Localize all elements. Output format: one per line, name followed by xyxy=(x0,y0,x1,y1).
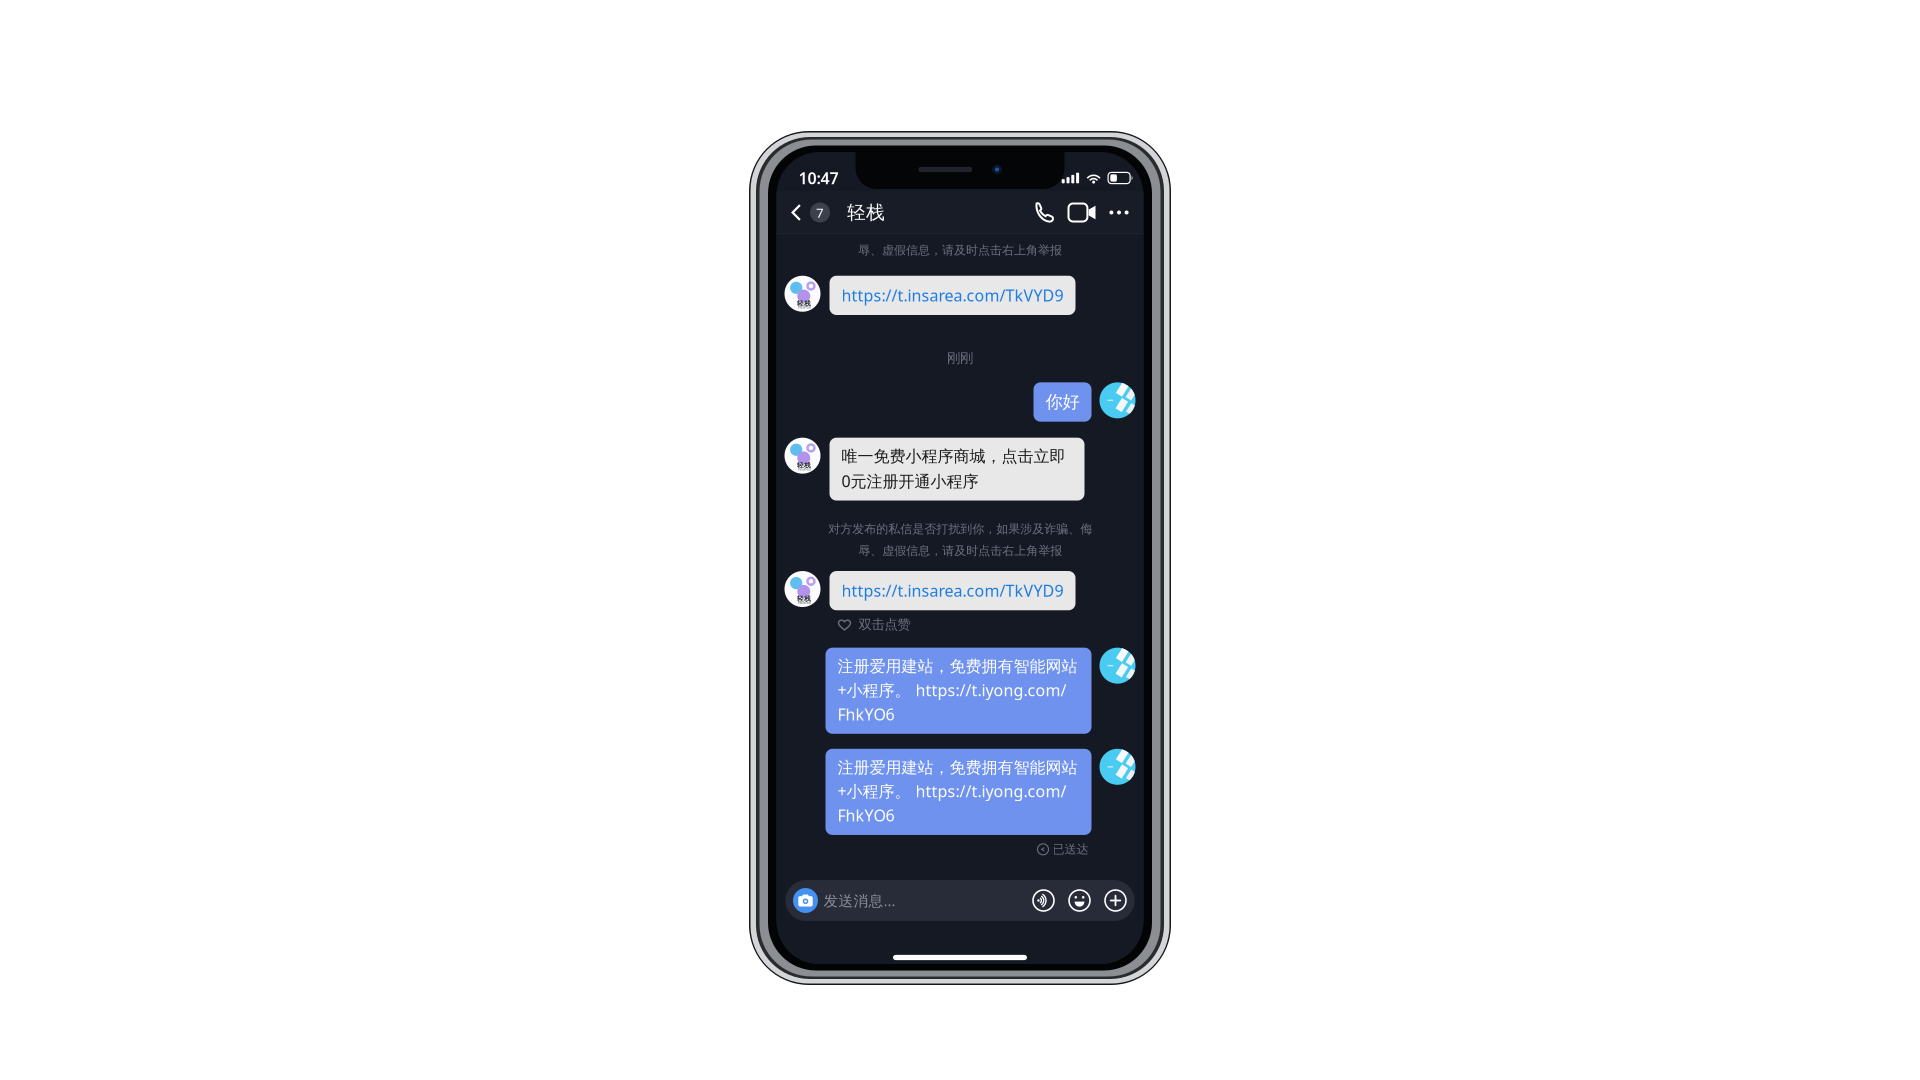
staticText: 注册爱用建站，免费拥有智能网站+小程序。 https://t.iyong.com… xyxy=(837,758,1077,826)
button[interactable]: 发送消息... xyxy=(823,880,1025,921)
button[interactable]: 轻栈 profile xyxy=(784,276,820,312)
staticText: https://t.insarea.com/TkVYD9 xyxy=(841,580,1063,601)
button[interactable]: Back, 7 unread xyxy=(776,191,843,234)
button[interactable]: 轻栈 profile xyxy=(784,571,820,607)
staticText: insarea xyxy=(798,466,811,472)
staticText: 发送消息... xyxy=(823,891,895,910)
button[interactable]: https://t.insarea.com/TkVYD9 xyxy=(829,571,1075,610)
staticText: 你好 xyxy=(1045,391,1079,413)
button[interactable]: https://t.insarea.com/TkVYD9 xyxy=(829,276,1075,315)
staticText: 10:47 xyxy=(798,167,838,189)
button[interactable]: 轻栈 profile xyxy=(784,438,820,474)
staticText: 双击点赞 xyxy=(858,616,910,633)
button[interactable]: More options xyxy=(1097,880,1133,921)
staticText: 轻栈 xyxy=(797,461,811,469)
button[interactable]: 唯一免费小程序商城，点击立即0元注册开通小程序 xyxy=(829,438,1084,501)
staticText: insarea xyxy=(798,304,811,310)
button[interactable]: More xyxy=(1102,191,1135,234)
button[interactable]: Video call xyxy=(1061,191,1102,234)
button[interactable]: 注册爱用建站，免费拥有智能网站+小程序。 https://t.iyong.com… xyxy=(825,648,1091,734)
staticText: https://t.insarea.com/TkVYD9 xyxy=(841,285,1063,306)
button[interactable]: My profile xyxy=(1099,749,1135,785)
staticText: 辱、虚假信息，请及时点击右上角举报 xyxy=(858,243,1062,258)
staticText: 刚刚 xyxy=(947,350,973,366)
button[interactable]: Emoji xyxy=(1061,880,1097,921)
button[interactable]: Voice message xyxy=(1025,880,1061,921)
staticText: insarea xyxy=(798,600,811,605)
staticText: 已送达 xyxy=(1052,842,1088,857)
staticText: 注册爱用建站，免费拥有智能网站+小程序。 https://t.iyong.com… xyxy=(837,657,1077,725)
button[interactable]: Camera xyxy=(787,880,823,921)
staticText: 唯一免费小程序商城，点击立即0元注册开通小程序 xyxy=(841,447,1065,492)
button[interactable]: 注册爱用建站，免费拥有智能网站+小程序。 https://t.iyong.com… xyxy=(825,749,1091,835)
staticText: 轻栈 xyxy=(797,595,811,603)
staticText: 轻栈 xyxy=(847,201,885,224)
staticText: 轻栈 xyxy=(797,299,811,308)
staticText: 对方发布的私信是否打扰到你，如果涉及诈骗、侮辱、虚假信息，请及时点击右上角举报 xyxy=(828,522,1092,558)
button[interactable]: 你好 xyxy=(1033,382,1091,422)
button[interactable]: My profile xyxy=(1099,382,1135,418)
button[interactable]: 轻栈 xyxy=(843,191,889,234)
staticText: 7 xyxy=(816,204,824,221)
button[interactable]: Voice call xyxy=(1025,191,1061,234)
button[interactable]: My profile xyxy=(1099,648,1135,684)
